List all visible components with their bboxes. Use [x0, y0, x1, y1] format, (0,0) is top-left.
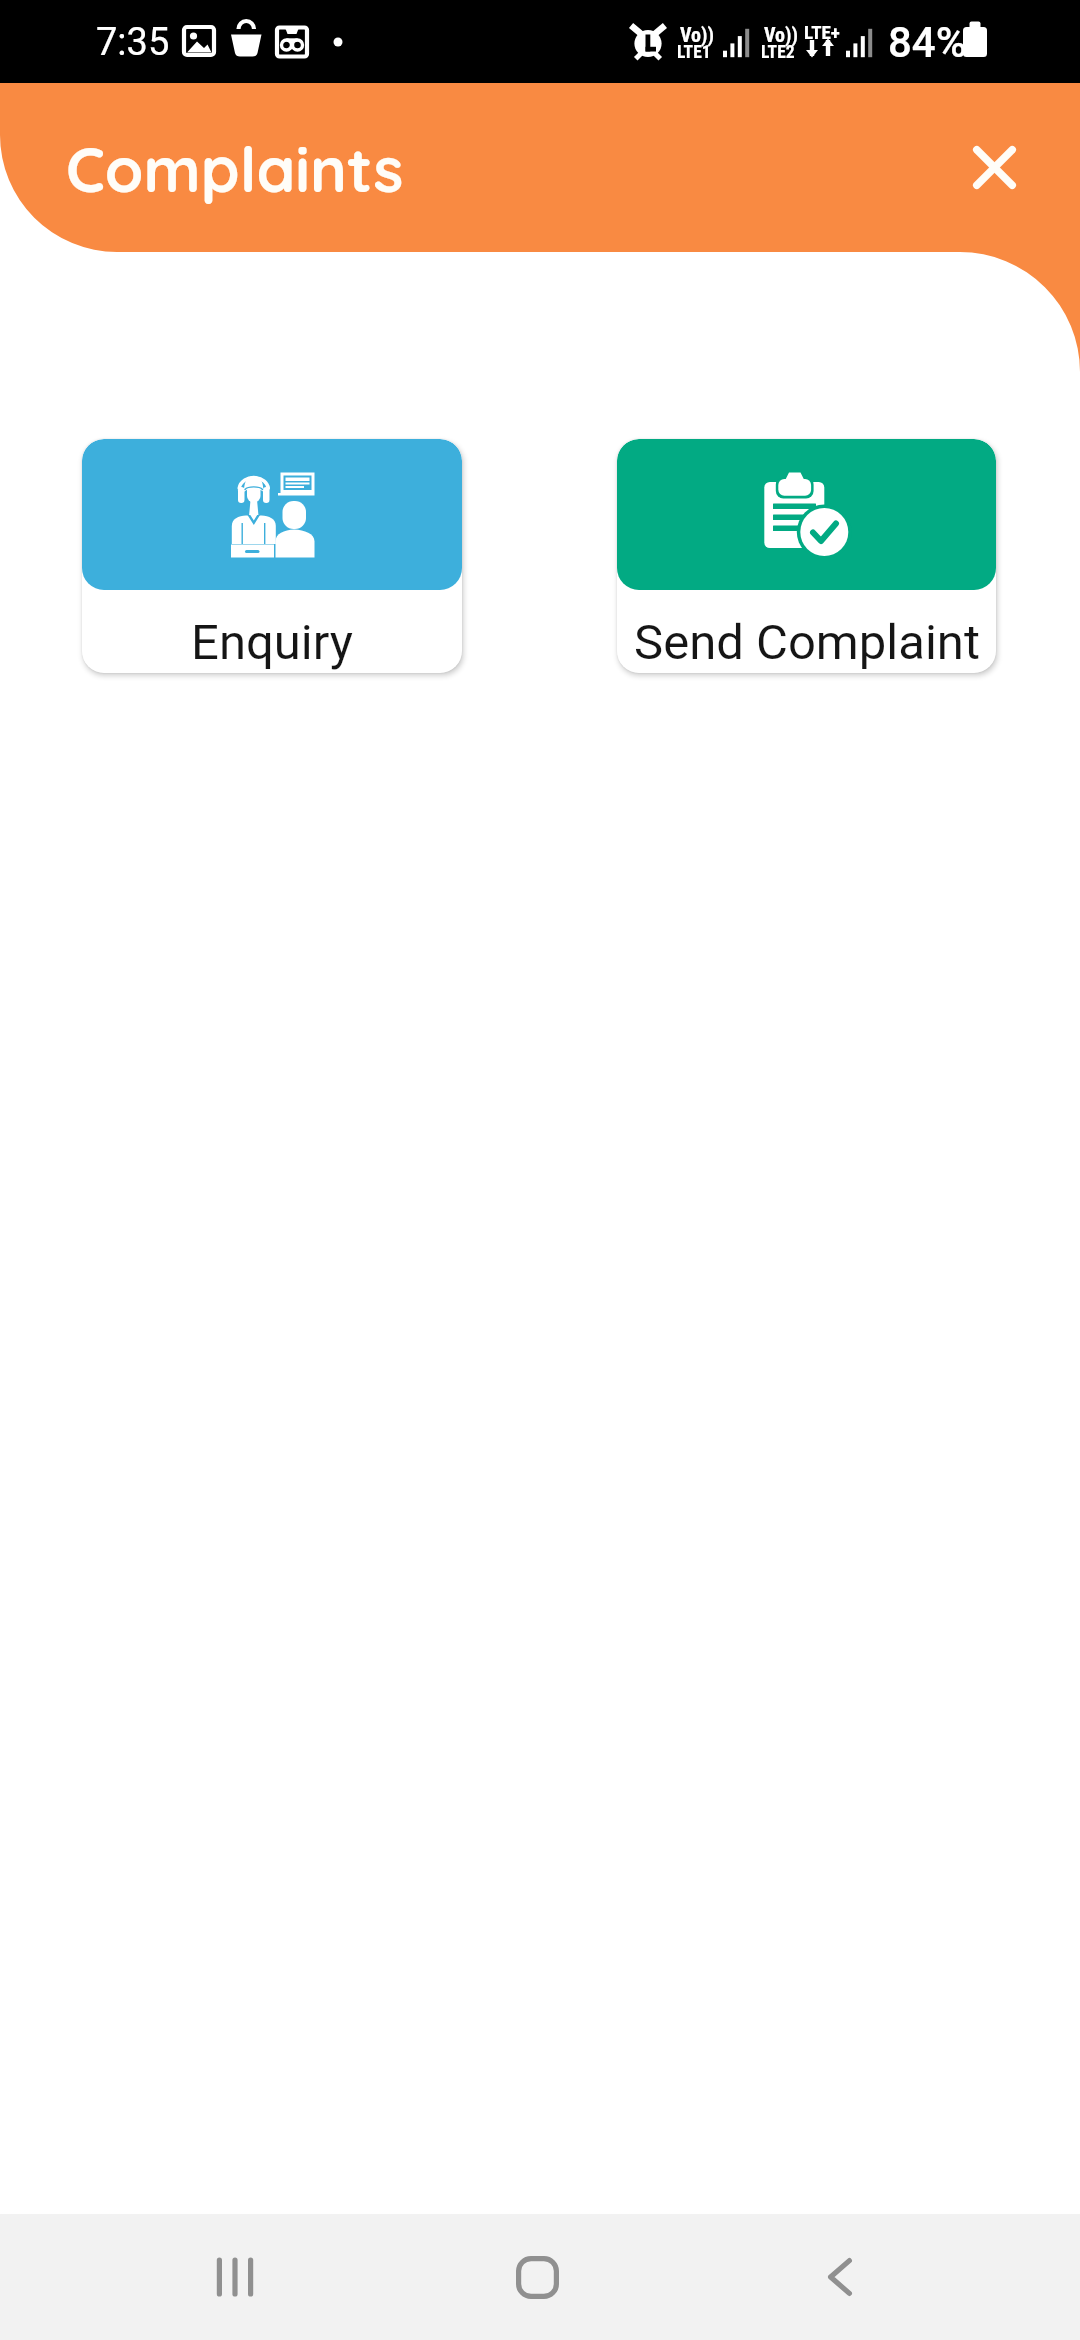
staticText: LTE1	[677, 42, 711, 63]
staticText: Send Complaint	[634, 614, 980, 671]
staticText: Vo))	[680, 23, 715, 46]
staticText: 84%	[888, 18, 967, 67]
button[interactable]: Recent apps	[155, 2222, 315, 2332]
button[interactable]: Home	[457, 2222, 617, 2332]
button[interactable]: Enquiry	[82, 439, 462, 673]
button[interactable]: Close	[934, 107, 1054, 227]
staticText: LTE2	[761, 42, 795, 63]
staticText: 7:35	[96, 20, 170, 65]
staticText: Enquiry	[191, 614, 353, 671]
button[interactable]: Send Complaint	[617, 439, 996, 673]
button[interactable]: Back	[760, 2222, 920, 2332]
staticText: Complaints	[66, 130, 404, 208]
staticText: LTE+	[804, 21, 840, 43]
staticText: Vo))	[764, 23, 799, 46]
